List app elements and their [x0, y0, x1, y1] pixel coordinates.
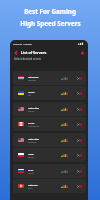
- staticText: Switzerland: [28, 184, 38, 186]
- button[interactable]: Russia: [13, 164, 86, 178]
- button[interactable]: United States: [13, 102, 86, 116]
- staticText: 4:49 PM 1.2KB/s: [13, 42, 32, 45]
- staticText: List of Servers: [21, 50, 47, 55]
- staticText: Washington: [28, 141, 37, 143]
- staticText: Warsaw: [28, 156, 34, 158]
- staticText: Ukraine: [28, 91, 35, 93]
- button[interactable]: Ukraine: [13, 86, 86, 100]
- staticText: Select desired server: [14, 57, 42, 61]
- button[interactable]: Premium: [79, 49, 86, 56]
- staticText: Poland: [28, 153, 34, 155]
- staticText: North Maryland: [28, 125, 40, 127]
- staticText: Amsterdam: [28, 79, 37, 81]
- staticText: United States: [28, 107, 40, 109]
- button[interactable]: Canada: [13, 117, 86, 131]
- staticText: High Speed Servers: [20, 19, 81, 28]
- button[interactable]: Switzerland: [13, 179, 86, 193]
- staticText: Zurich: [28, 187, 33, 189]
- staticText: New York: [28, 110, 35, 112]
- button[interactable]: United States: [13, 133, 86, 147]
- staticText: Moscow: [28, 172, 34, 174]
- staticText: Netherlands: [28, 76, 39, 78]
- staticText: Kyiv: [28, 94, 31, 96]
- staticText: Canada: [28, 122, 35, 124]
- staticText: Best For Gaming: [24, 7, 76, 16]
- button[interactable]: Back: [12, 49, 19, 56]
- staticText: United States: [28, 138, 40, 140]
- button[interactable]: Netherlands: [13, 71, 86, 85]
- staticText: Russia: [28, 169, 34, 171]
- button[interactable]: Poland: [13, 148, 86, 162]
